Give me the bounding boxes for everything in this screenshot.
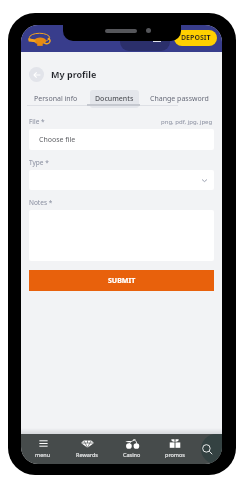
staticText: Change password xyxy=(150,94,209,104)
staticText: Rewards xyxy=(76,451,99,458)
staticText: png, pdf, jpg, jpeg xyxy=(161,118,213,126)
button[interactable]: Casino xyxy=(112,439,152,463)
button[interactable]: Choose file xyxy=(29,129,214,150)
staticText: Notes * xyxy=(29,198,53,207)
button[interactable]: promos xyxy=(155,439,195,463)
button[interactable]: Back xyxy=(29,67,44,82)
staticText: Personal info xyxy=(34,94,78,104)
staticText: promos xyxy=(165,451,185,458)
staticText: Type * xyxy=(29,158,49,167)
button[interactable]: menu xyxy=(23,439,63,463)
staticText: DEPOSIT xyxy=(181,33,211,43)
button[interactable]: SUBMIT xyxy=(29,270,214,291)
staticText: File * xyxy=(29,117,45,126)
button[interactable]: Personal info xyxy=(29,90,83,108)
staticText: My profile xyxy=(51,68,97,80)
staticText: SUBMIT xyxy=(108,276,136,286)
button[interactable]: Rewards xyxy=(67,439,107,463)
staticText: Documents xyxy=(95,94,134,104)
staticText: menu xyxy=(35,451,51,458)
button[interactable]: Balance xyxy=(120,33,170,51)
button[interactable]: Search xyxy=(201,434,222,464)
staticText: Choose file xyxy=(39,135,76,145)
button[interactable]: Documents xyxy=(90,90,139,108)
staticText: Casino xyxy=(123,451,141,458)
button[interactable]: Home xyxy=(28,33,51,47)
button[interactable]: DEPOSIT xyxy=(174,30,217,46)
button[interactable]: Change password xyxy=(145,90,214,108)
